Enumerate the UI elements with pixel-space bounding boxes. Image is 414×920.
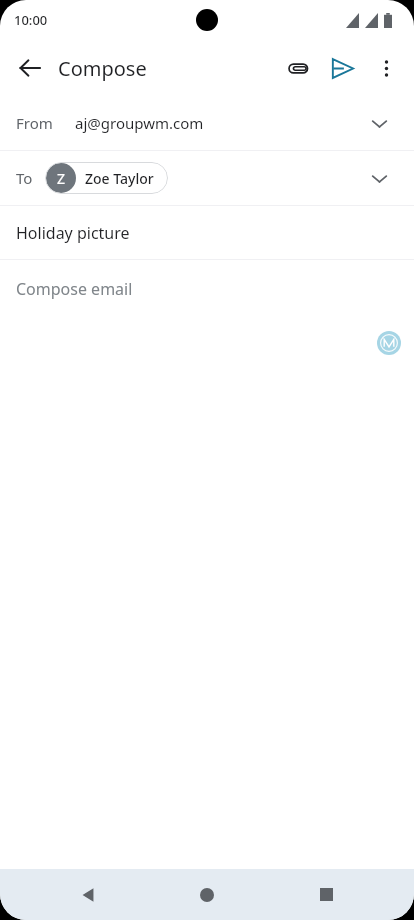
staticText: 10:00	[14, 11, 48, 29]
button[interactable]: Recent apps	[295, 869, 357, 920]
button[interactable]: Expand	[362, 106, 396, 140]
staticText: aj@groupwm.com	[75, 113, 204, 133]
button[interactable]: More options	[364, 46, 408, 90]
button[interactable]: From	[0, 96, 414, 150]
button[interactable]: Holiday picture	[0, 206, 414, 259]
staticText: Compose email	[16, 278, 133, 300]
staticText: Holiday picture	[16, 222, 130, 244]
button[interactable]: Home	[176, 869, 238, 920]
staticText: Zoe Taylor	[85, 169, 154, 188]
staticText: Compose	[58, 55, 147, 82]
button[interactable]: Attach file	[276, 46, 320, 90]
staticText: To	[16, 168, 33, 188]
other: Motorola	[377, 331, 401, 355]
button[interactable]: Z	[45, 162, 168, 194]
button[interactable]: Send	[320, 46, 364, 90]
button[interactable]: To	[0, 151, 414, 205]
button[interactable]: Expand	[362, 161, 396, 195]
button[interactable]: Back	[57, 869, 119, 920]
button[interactable]: Compose email	[0, 260, 414, 869]
button[interactable]: Back	[8, 46, 52, 90]
staticText: Z	[57, 169, 66, 188]
staticText: From	[16, 113, 53, 133]
